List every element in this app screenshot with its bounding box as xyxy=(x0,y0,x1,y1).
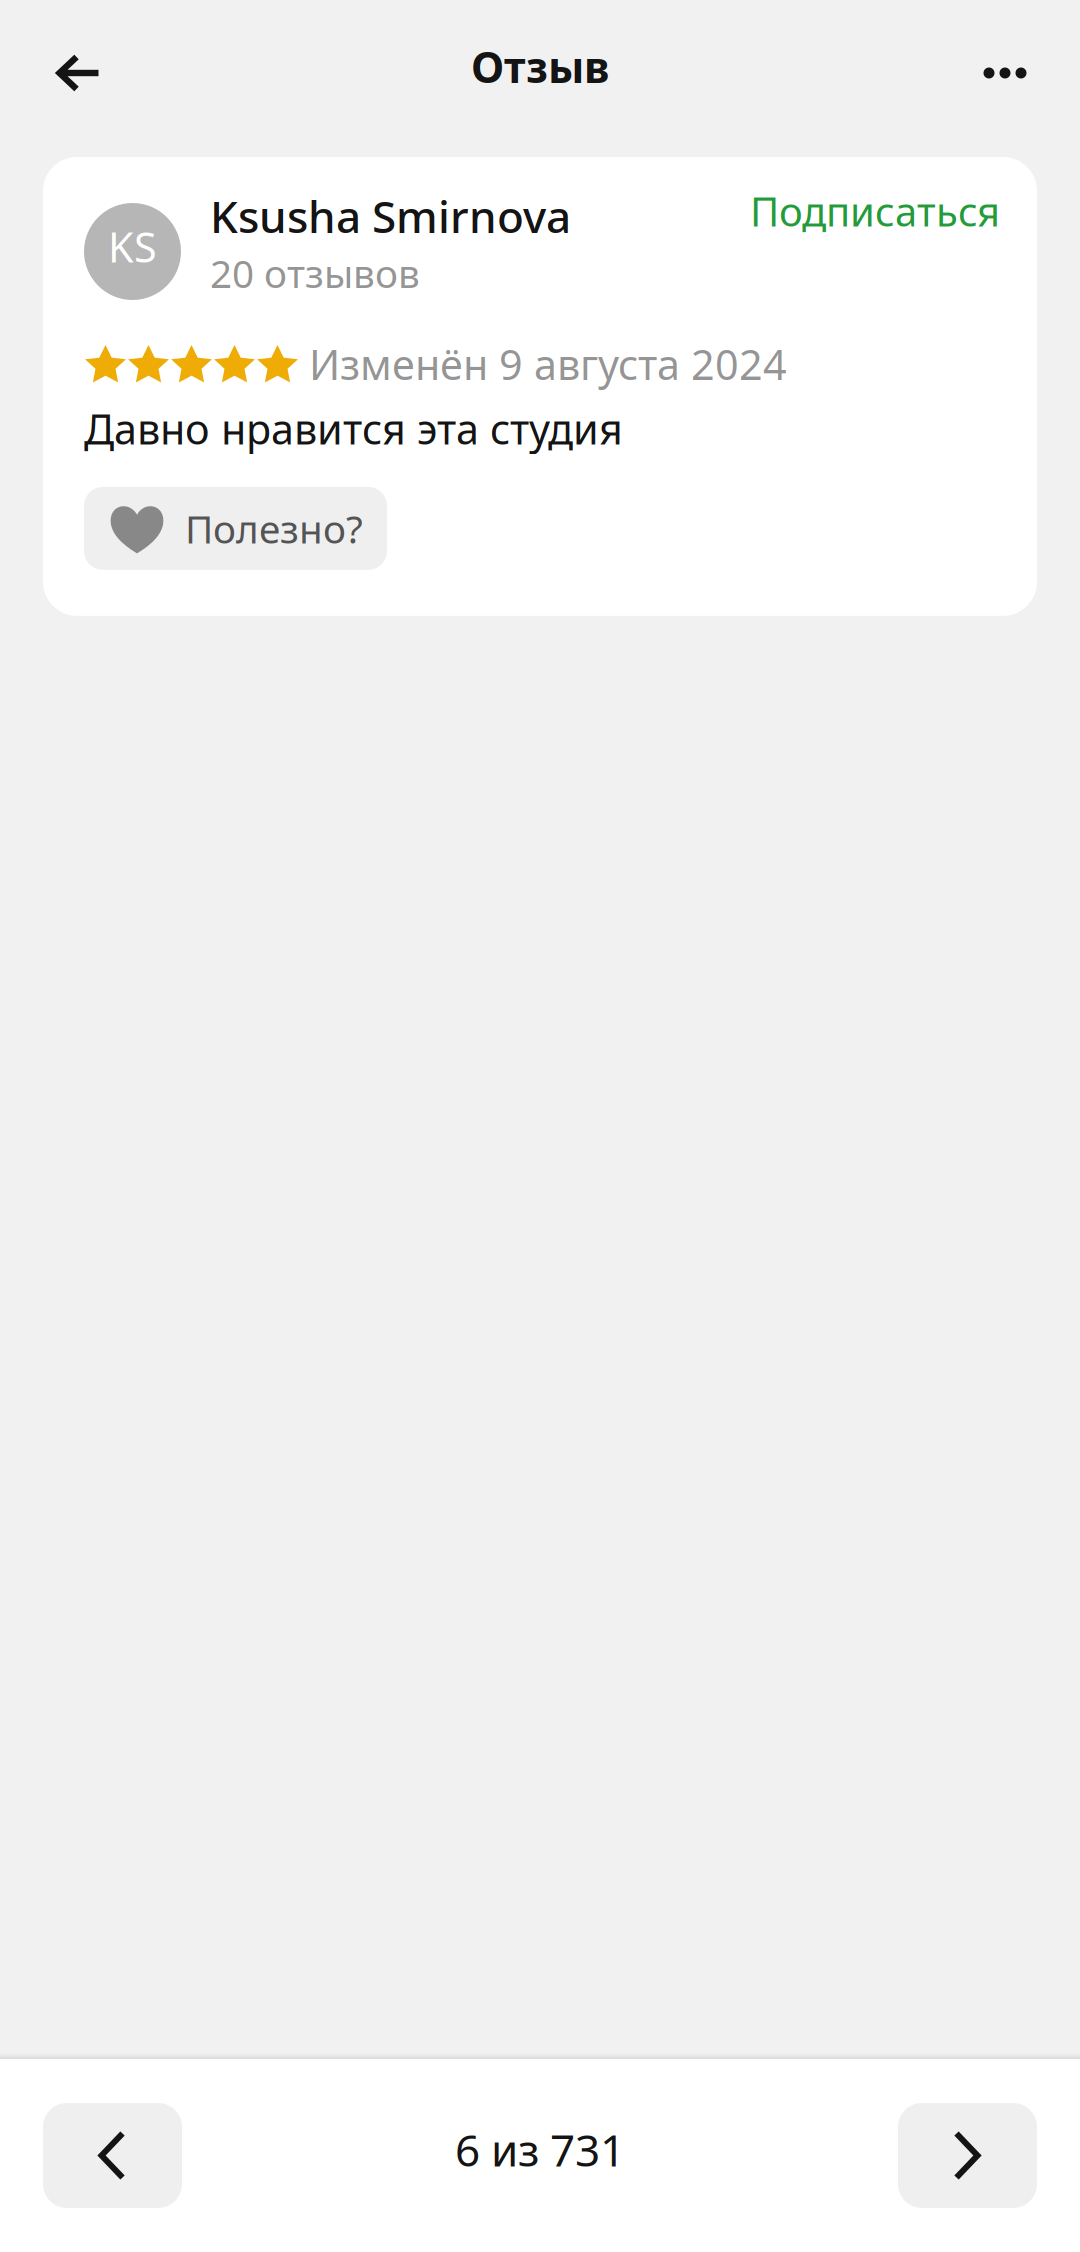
staticText: Ksusha Smirnova xyxy=(210,187,571,245)
staticText: Изменён 9 августа 2024 xyxy=(309,337,787,391)
staticText: 20 отзывов xyxy=(210,247,420,299)
button[interactable]: Полезно? xyxy=(84,487,387,570)
button[interactable]: Подписаться xyxy=(750,203,1000,219)
button[interactable]: Следующий отзыв xyxy=(898,2103,1037,2208)
button[interactable]: Предыдущий отзыв xyxy=(43,2103,182,2208)
staticText: Полезно? xyxy=(185,503,363,554)
staticText: Подписаться xyxy=(750,184,1000,237)
staticText: KS xyxy=(108,219,157,274)
button[interactable]: Ещё xyxy=(957,25,1053,121)
button[interactable]: Назад xyxy=(31,25,127,121)
staticText: Давно нравится эта студия xyxy=(84,401,623,456)
staticText: 6 из 731 xyxy=(455,2120,625,2179)
staticText: Отзыв xyxy=(471,38,609,95)
